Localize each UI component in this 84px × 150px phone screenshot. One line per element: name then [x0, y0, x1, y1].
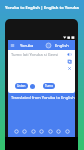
- staticText: Tumo: [45, 84, 53, 88]
- button[interactable]: Listen: [67, 52, 72, 57]
- button[interactable]: Action: [56, 129, 61, 134]
- button[interactable]: Action: [65, 129, 70, 134]
- button[interactable]: Menu: [10, 43, 15, 48]
- button[interactable]: Clear: [67, 66, 72, 71]
- button[interactable]: Action: [39, 129, 44, 134]
- staticText: Listen: [17, 84, 26, 88]
- button[interactable]: Microphone: [30, 84, 35, 89]
- button[interactable]: Action: [14, 129, 19, 134]
- button[interactable]: Action: [48, 129, 53, 134]
- staticText: English: [55, 43, 69, 48]
- button[interactable]: Action: [22, 129, 27, 134]
- staticText: Translated from Yoruba to English: [11, 95, 75, 100]
- staticText: Yoruba: [20, 43, 34, 48]
- staticText: Tumo lati Yoruba si Geesi: [11, 52, 59, 57]
- button[interactable]: Listen: [15, 83, 28, 89]
- button[interactable]: English: [55, 43, 69, 48]
- staticText: Yoruba to English | English to Yoruba: [5, 5, 79, 10]
- button[interactable]: Action: [31, 129, 36, 134]
- button[interactable]: Tumo: [43, 83, 55, 89]
- button[interactable]: Yoruba: [20, 43, 34, 48]
- button[interactable]: Copy: [67, 59, 72, 64]
- button[interactable]: Swap languages: [46, 43, 51, 48]
